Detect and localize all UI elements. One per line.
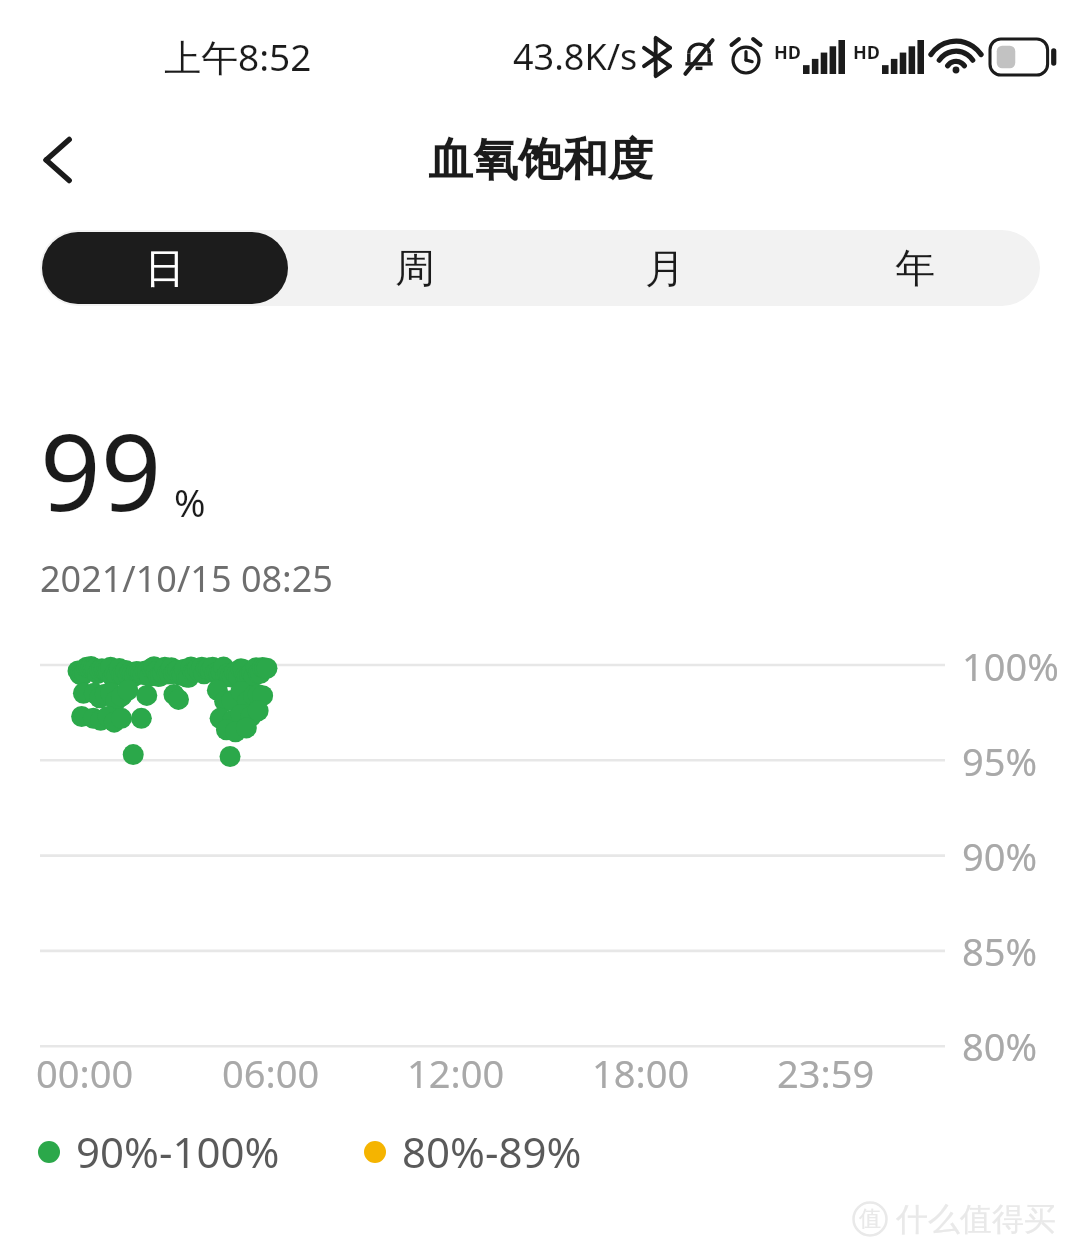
staticText: % bbox=[174, 476, 206, 528]
staticText: 85% bbox=[962, 925, 1038, 977]
staticText: 上午8:52 bbox=[164, 31, 312, 82]
staticText: 95% bbox=[962, 735, 1038, 787]
staticText: 周 bbox=[395, 243, 435, 293]
staticText: 90%-100% bbox=[76, 1123, 280, 1180]
staticText: 43.8K/s bbox=[513, 32, 638, 81]
staticText: 80%-89% bbox=[402, 1123, 582, 1180]
staticText: 血氧饱和度 bbox=[428, 132, 653, 189]
staticText: 90% bbox=[962, 830, 1038, 882]
button[interactable]: 80%-89% bbox=[364, 1123, 582, 1180]
staticText: 06:00 bbox=[222, 1047, 320, 1099]
button[interactable]: 月 bbox=[542, 232, 788, 304]
button[interactable]: 年 bbox=[792, 232, 1038, 304]
button[interactable]: 90%-100% bbox=[38, 1123, 280, 1180]
staticText: 值 bbox=[859, 1205, 881, 1233]
staticText: HD bbox=[853, 40, 880, 65]
staticText: 23:59 bbox=[777, 1047, 875, 1099]
staticText: 18:00 bbox=[592, 1047, 690, 1099]
staticText: 2021/10/15 08:25 bbox=[40, 554, 333, 603]
button[interactable]: 周 bbox=[292, 232, 538, 304]
staticText: 100% bbox=[962, 640, 1059, 692]
staticText: 年 bbox=[895, 243, 935, 293]
button[interactable]: 日 bbox=[42, 232, 288, 304]
staticText: HD bbox=[774, 40, 801, 65]
button[interactable]: Back bbox=[16, 118, 100, 202]
staticText: 99 bbox=[40, 398, 162, 542]
staticText: 12:00 bbox=[407, 1047, 505, 1099]
staticText: 00:00 bbox=[36, 1047, 134, 1099]
staticText: 月 bbox=[645, 243, 685, 293]
staticText: 日 bbox=[145, 243, 185, 293]
staticText: 什么值得买 bbox=[896, 1199, 1056, 1239]
staticText: 80% bbox=[962, 1020, 1038, 1072]
